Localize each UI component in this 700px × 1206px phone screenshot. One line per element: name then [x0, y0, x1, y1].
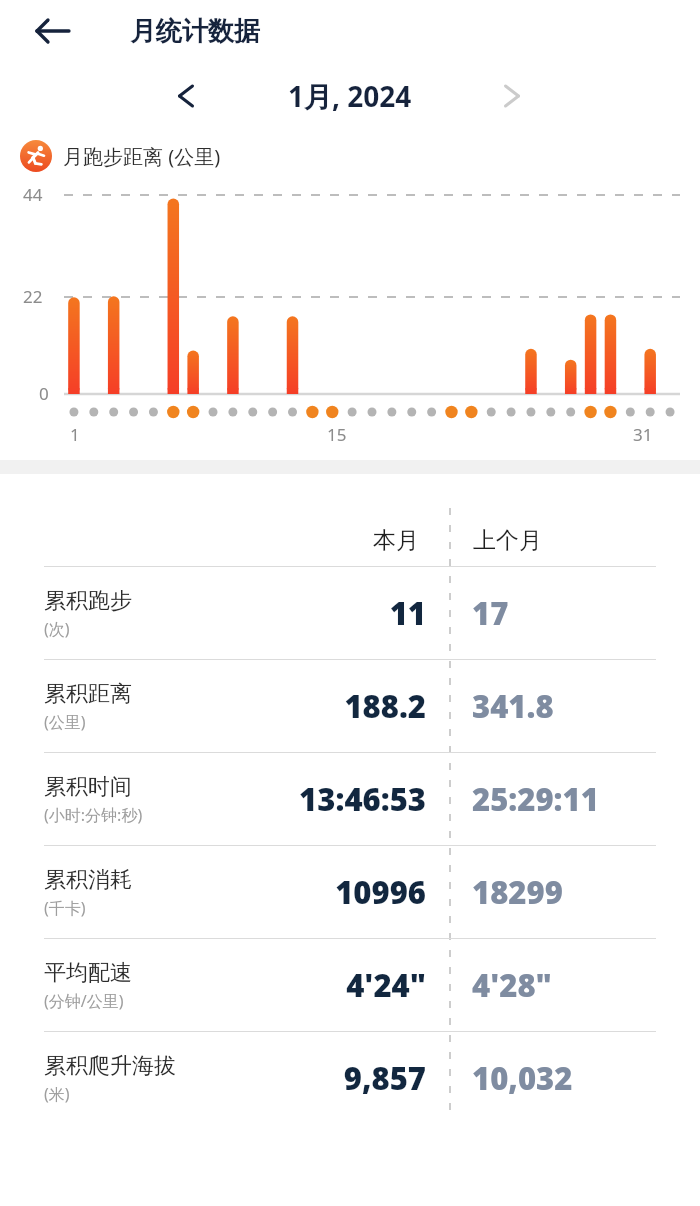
- staticText: 15: [327, 423, 347, 442]
- staticText: 13:46:53: [198, 778, 426, 820]
- staticText: 4'28": [472, 964, 552, 1006]
- staticText: 188.2: [198, 685, 426, 727]
- button[interactable]: 累积距离: [18, 660, 682, 752]
- staticText: (米): [44, 1083, 70, 1105]
- staticText: 1月, 2024: [288, 77, 412, 115]
- staticText: 10996: [198, 871, 426, 913]
- staticText: 累积消耗: [44, 866, 132, 894]
- button[interactable]: Back: [22, 0, 84, 62]
- staticText: 平均配速: [44, 959, 132, 987]
- staticText: 22: [23, 285, 43, 308]
- staticText: 25:29:11: [472, 778, 599, 820]
- staticText: (分钟/公里): [44, 990, 124, 1012]
- staticText: 0: [39, 382, 49, 405]
- staticText: 31: [633, 423, 653, 442]
- staticText: 341.8: [472, 685, 554, 727]
- staticText: 11: [198, 592, 426, 634]
- staticText: 10,032: [472, 1057, 573, 1099]
- staticText: (小时:分钟:秒): [44, 804, 143, 826]
- staticText: 4'24": [198, 964, 426, 1006]
- staticText: (公里): [44, 711, 86, 733]
- button[interactable]: 累积时间: [18, 753, 682, 845]
- staticText: 累积距离: [44, 680, 132, 708]
- staticText: (千卡): [44, 897, 86, 919]
- staticText: 本月: [373, 526, 419, 555]
- staticText: 18299: [472, 871, 563, 913]
- staticText: 17: [472, 592, 509, 634]
- staticText: 月统计数据: [130, 15, 260, 48]
- staticText: 44: [23, 183, 43, 206]
- staticText: 累积爬升海拔: [44, 1052, 176, 1080]
- staticText: 1: [70, 423, 80, 442]
- staticText: 月跑步距离 (公里): [63, 143, 221, 170]
- staticText: 上个月: [473, 526, 542, 555]
- staticText: 累积时间: [44, 773, 132, 801]
- button[interactable]: 累积爬升海拔: [18, 1032, 682, 1124]
- staticText: 累积跑步: [44, 587, 132, 615]
- button[interactable]: 累积消耗: [18, 846, 682, 938]
- button[interactable]: Previous month: [161, 71, 211, 121]
- staticText: (次): [44, 618, 70, 640]
- button[interactable]: 累积跑步: [18, 567, 682, 659]
- button[interactable]: Next month: [487, 71, 537, 121]
- button[interactable]: 平均配速: [18, 939, 682, 1031]
- staticText: 9,857: [198, 1057, 426, 1099]
